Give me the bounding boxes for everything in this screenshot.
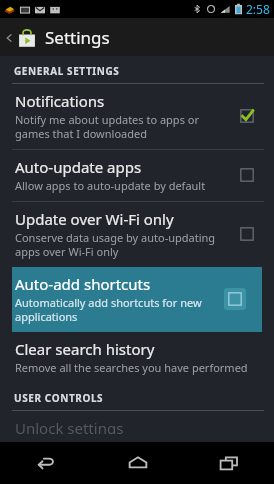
button[interactable]: Auto-update apps: [0, 150, 274, 201]
staticText: Settings: [45, 26, 110, 49]
button[interactable]: Notifications: [0, 84, 274, 149]
button[interactable]: Clear search history: [0, 332, 274, 383]
button[interactable]: Recent apps: [183, 442, 274, 484]
staticText: Remove all the searches you have perform…: [15, 360, 248, 375]
button[interactable]: Home: [92, 442, 183, 484]
staticText: Auto-add shortcuts: [15, 274, 151, 294]
staticText: USER CONTROLS: [14, 391, 104, 405]
staticText: Unlock settings: [15, 418, 124, 434]
button[interactable]: Update over Wi-Fi only: [0, 202, 274, 267]
staticText: GENERAL SETTINGS: [14, 64, 120, 78]
button: Unlock settings: [0, 411, 274, 442]
button[interactable]: Back: [0, 442, 92, 484]
staticText: Automatically add shortcuts for new appl…: [15, 295, 202, 324]
staticText: Allow apps to auto-update by default: [15, 178, 206, 193]
staticText: Clear search history: [15, 339, 155, 359]
staticText: Conserve data usage by auto-updating app…: [15, 230, 216, 259]
button[interactable]: Settings, navigate up: [0, 18, 274, 56]
staticText: Auto-update apps: [15, 157, 142, 177]
staticText: 2:58: [246, 1, 270, 17]
button[interactable]: Auto-add shortcuts: [12, 267, 262, 332]
staticText: Notify me about updates to apps or games…: [15, 112, 199, 141]
staticText: Update over Wi-Fi only: [15, 209, 174, 229]
staticText: Notifications: [15, 91, 105, 111]
